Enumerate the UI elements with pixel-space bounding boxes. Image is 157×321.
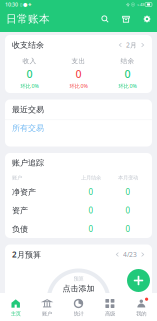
staticText: 日常账本 (6, 12, 50, 25)
button[interactable]: 资产 (5, 201, 152, 220)
staticText: 0 (125, 224, 130, 234)
staticText: 上月结余 (81, 174, 101, 181)
staticText: 2月预算 (12, 249, 41, 260)
staticText: 净资产 (12, 187, 36, 197)
button[interactable]: 负债 (5, 220, 152, 238)
button[interactable]: 记账 (122, 15, 130, 23)
button[interactable]: 账户 (31, 293, 63, 321)
staticText: 环比 0% (20, 82, 38, 89)
staticText: 0 (125, 187, 130, 197)
staticText: 统计 (73, 310, 83, 317)
staticText: 负债 (12, 224, 28, 234)
staticText: 0 (88, 205, 93, 216)
staticText: 0 (88, 187, 93, 197)
staticText: 账户追踪 (12, 158, 44, 168)
staticText: 所有交易 (12, 123, 44, 133)
staticText: 高级 (105, 310, 115, 317)
button[interactable]: 高级 (94, 293, 126, 321)
staticText: 0 (125, 205, 130, 216)
staticText: 令 ⓥ ⌁ 43 (126, 2, 144, 7)
button[interactable]: 净资产 (5, 183, 152, 201)
staticText: 0 (88, 224, 93, 234)
button[interactable]: 搜索 (101, 15, 109, 23)
button[interactable]: 所有交易 (5, 120, 152, 136)
staticText: 账户 (12, 174, 22, 181)
staticText: 2月 (126, 41, 137, 49)
button[interactable]: 设置 (143, 15, 151, 23)
staticText: 收入 (22, 57, 36, 65)
staticText: 账户 (42, 310, 52, 317)
staticText: ▯ ⬤ ❖ (20, 2, 32, 7)
staticText: 10:30 (5, 1, 18, 8)
staticText: 4/23 (123, 250, 137, 259)
staticText: 收支结余 (12, 40, 44, 50)
staticText: 本月变动 (118, 174, 138, 181)
staticText: 我的 (136, 310, 146, 317)
staticText: 点击添加 (62, 284, 94, 293)
staticText: 资产 (12, 206, 28, 215)
staticText: 环比 0% (69, 82, 87, 89)
button[interactable]: 添加 (127, 269, 150, 292)
staticText: 预算 (73, 275, 83, 282)
staticText: 环比 0% (118, 82, 136, 89)
staticText: 主页 (11, 310, 21, 317)
staticText: 支出 (71, 57, 85, 65)
staticText: 0 (26, 67, 32, 81)
staticText: 最近交易 (12, 105, 44, 114)
button[interactable]: 统计 (63, 293, 94, 321)
staticText: 结余 (120, 57, 134, 65)
button[interactable]: 主页 (0, 293, 31, 321)
staticText: 0 (75, 67, 81, 81)
button[interactable]: 我的 (126, 293, 157, 321)
staticText: 0 (124, 67, 130, 81)
